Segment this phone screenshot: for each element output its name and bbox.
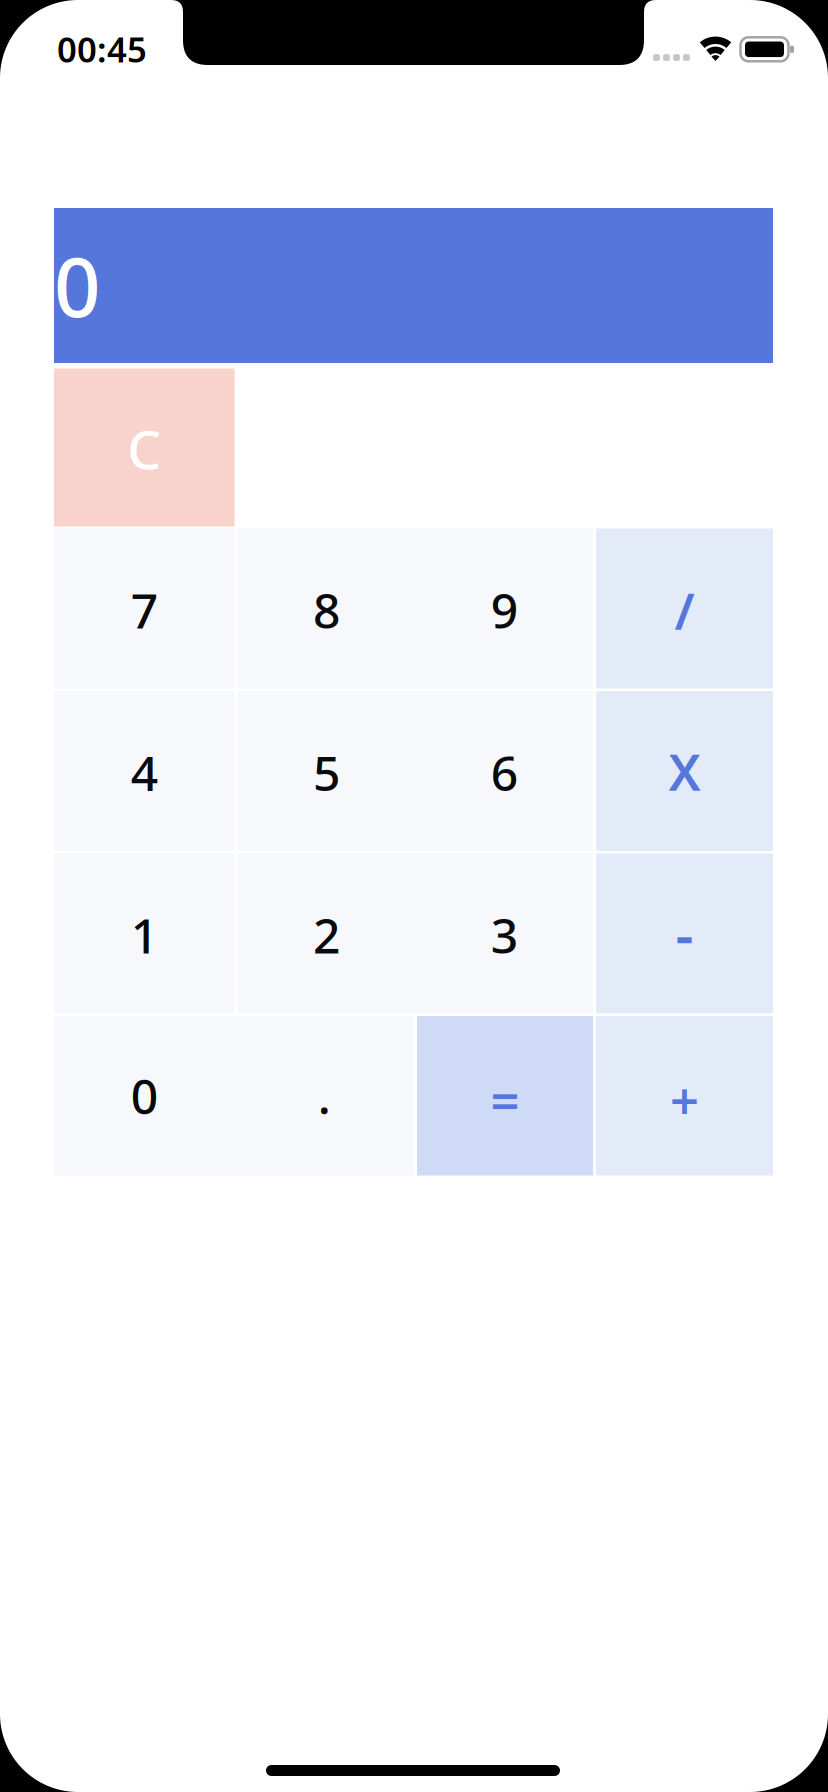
staticText: 4 (131, 741, 158, 804)
button[interactable]: 2 (237, 853, 415, 1013)
button[interactable]: 4 (54, 691, 234, 851)
button[interactable]: 1 (54, 853, 234, 1013)
staticText: 7 (131, 578, 158, 642)
button[interactable]: X (596, 691, 773, 851)
staticText: = (490, 1067, 519, 1134)
button[interactable]: = (417, 1016, 593, 1175)
button[interactable]: C (54, 368, 234, 526)
staticText: 1 (131, 903, 158, 967)
staticText: 5 (313, 741, 340, 804)
button[interactable]: 9 (415, 528, 593, 688)
staticText: C (127, 413, 161, 484)
button[interactable]: / (596, 528, 773, 688)
button[interactable]: - (596, 853, 773, 1013)
button[interactable]: 0 (54, 1016, 234, 1175)
staticText: 3 (491, 903, 518, 967)
staticText: 00:45 (57, 26, 147, 72)
staticText: . (318, 1064, 331, 1128)
button[interactable]: 5 (237, 691, 415, 851)
staticText: + (670, 1067, 699, 1134)
button[interactable]: 8 (237, 528, 415, 688)
button[interactable]: 3 (415, 853, 593, 1013)
staticText: 0 (54, 231, 101, 339)
staticText: 6 (491, 741, 518, 804)
staticText: X (668, 737, 700, 805)
button[interactable]: 7 (54, 528, 234, 688)
button[interactable]: 6 (415, 691, 593, 851)
staticText: 8 (313, 578, 340, 642)
staticText: / (674, 576, 694, 644)
button[interactable]: . (234, 1016, 414, 1175)
staticText: 2 (313, 903, 340, 967)
button[interactable]: + (596, 1016, 773, 1175)
staticText: 9 (491, 578, 518, 642)
staticText: 0 (131, 1064, 158, 1128)
staticText: - (675, 896, 693, 971)
